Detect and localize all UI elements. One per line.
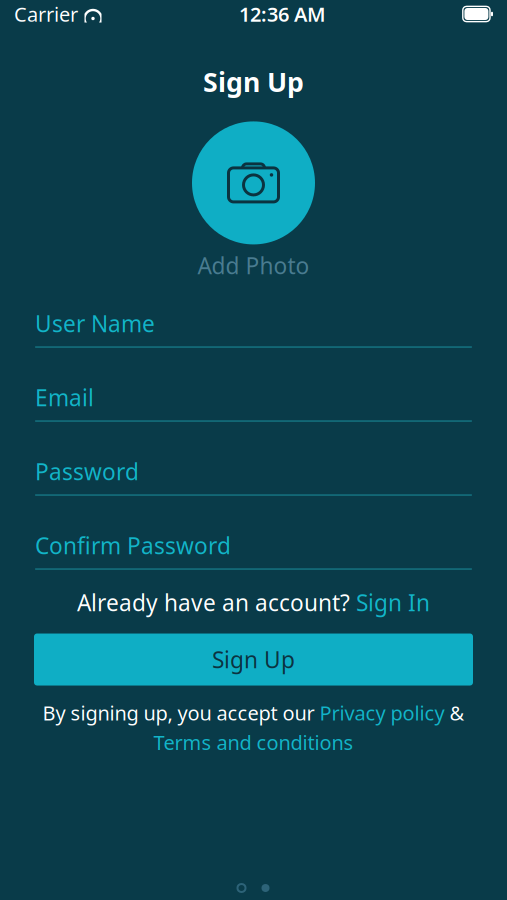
staticText: Carrier: [14, 1, 78, 27]
button[interactable]: Confirm Password: [35, 530, 472, 569]
button[interactable]: Terms and conditions: [153, 729, 353, 756]
button[interactable]: Privacy policy: [319, 699, 444, 726]
staticText: Already have an account?: [77, 587, 350, 618]
staticText: User Name: [35, 308, 155, 339]
staticText: Password: [35, 456, 139, 487]
button[interactable]: Email: [35, 382, 472, 421]
button[interactable]: Add Photo: [192, 121, 315, 280]
staticText: Sign In: [356, 587, 430, 618]
staticText: &: [444, 699, 464, 726]
staticText: Email: [35, 382, 94, 413]
staticText: Confirm Password: [35, 530, 231, 561]
staticText: Add Photo: [197, 250, 309, 280]
button[interactable]: User Name: [35, 308, 472, 347]
button[interactable]: Sign Up: [34, 633, 473, 685]
staticText: Privacy policy: [319, 699, 444, 726]
button[interactable]: Password: [35, 456, 472, 495]
staticText: By signing up, you accept our: [42, 699, 319, 726]
staticText: Sign Up: [203, 64, 304, 99]
staticText: Sign Up: [212, 644, 295, 675]
staticText: 12:36 AM: [239, 1, 326, 27]
staticText: Terms and conditions: [153, 729, 353, 756]
button[interactable]: Sign In: [356, 587, 430, 618]
